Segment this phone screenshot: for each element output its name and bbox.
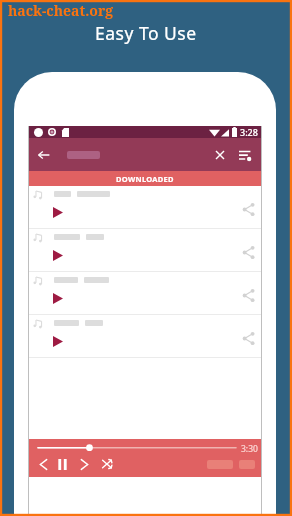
button[interactable]: Shuffle: [99, 456, 115, 472]
button[interactable]: Next: [76, 456, 92, 472]
button[interactable]: Pause: [54, 456, 70, 472]
button[interactable]: Close: [210, 145, 230, 165]
button[interactable]: Share: [29, 229, 261, 272]
button[interactable]: Share: [29, 272, 261, 315]
staticText: hack-cheat.org: [8, 1, 114, 20]
staticText: 3:28: [240, 126, 258, 138]
button[interactable]: Share: [29, 315, 261, 358]
button[interactable]: Share: [240, 330, 257, 347]
button[interactable]: Previous: [35, 456, 51, 472]
button[interactable]: Share: [240, 201, 257, 218]
button[interactable]: Share: [29, 186, 261, 229]
staticText: Easy To Use: [95, 21, 197, 45]
staticText: DOWNLOADED: [116, 174, 174, 184]
button[interactable]: Sort: [235, 145, 255, 165]
button[interactable]: Share: [240, 244, 257, 261]
staticText: 3:30: [241, 443, 258, 455]
button[interactable]: Share: [240, 287, 257, 304]
button[interactable]: Back: [34, 145, 54, 165]
